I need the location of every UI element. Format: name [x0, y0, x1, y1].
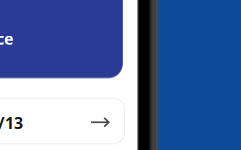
staticText: /13: [0, 112, 23, 133]
button[interactable]: /13: [0, 98, 125, 144]
staticText: ce: [0, 28, 14, 49]
